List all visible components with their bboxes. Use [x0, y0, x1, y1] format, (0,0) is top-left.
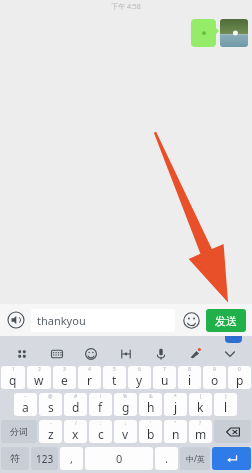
- button[interactable]: 9: [203, 366, 226, 389]
- staticText: k: [197, 399, 204, 415]
- staticText: a: [22, 399, 29, 415]
- button[interactable]: Text cursor: [116, 344, 136, 364]
- button[interactable]: 7: [153, 366, 176, 389]
- button[interactable]: ': [139, 420, 162, 443]
- staticText: j: [174, 399, 178, 415]
- staticText: 2: [38, 366, 41, 373]
- button[interactable]: Apps: [12, 344, 32, 364]
- button[interactable]: 2: [27, 366, 51, 389]
- staticText: p: [236, 372, 244, 388]
- button[interactable]: ?: [189, 420, 212, 443]
- staticText: 8: [188, 366, 191, 373]
- button[interactable]: Microphone: [151, 344, 171, 364]
- button[interactable]: 0: [228, 366, 251, 389]
- staticText: t: [112, 372, 117, 388]
- staticText: c: [98, 426, 104, 442]
- button[interactable]: (: [189, 393, 212, 416]
- button[interactable]: thankyou: [31, 309, 175, 332]
- staticText: r: [87, 372, 92, 388]
- staticText: !: [100, 393, 102, 400]
- staticText: -: [50, 420, 52, 427]
- staticText: thankyou: [37, 313, 86, 328]
- button[interactable]: %: [114, 393, 137, 416]
- staticText: ': [150, 420, 152, 427]
- button[interactable]: [191, 19, 216, 47]
- staticText: v: [122, 426, 129, 442]
- staticText: #: [74, 393, 78, 400]
- staticText: ;: [125, 420, 127, 427]
- staticText: ~: [24, 393, 27, 400]
- button[interactable]: 3: [53, 366, 76, 389]
- staticText: d: [72, 399, 80, 415]
- button[interactable]: 发送: [206, 309, 246, 332]
- button[interactable]: 符: [1, 447, 29, 470]
- staticText: @: [48, 393, 53, 400]
- staticText: 123: [36, 452, 54, 466]
- button[interactable]: -: [39, 420, 62, 443]
- button[interactable]: :: [89, 420, 112, 443]
- staticText: &: [149, 393, 153, 400]
- button[interactable]: 8: [178, 366, 201, 389]
- staticText: o: [211, 372, 219, 388]
- staticText: 5: [113, 366, 116, 373]
- button[interactable]: *: [164, 393, 187, 416]
- button[interactable]: 中/英: [180, 447, 210, 470]
- staticText: g: [122, 399, 130, 415]
- staticText: l: [224, 399, 228, 415]
- staticText: ): [225, 393, 227, 400]
- button[interactable]: 4: [78, 366, 101, 389]
- staticText: n: [172, 426, 180, 442]
- staticText: b: [147, 426, 155, 442]
- button[interactable]: Keyboard handle: [225, 336, 242, 343]
- button[interactable]: ": [164, 420, 187, 443]
- staticText: 发送: [215, 314, 237, 328]
- button[interactable]: @: [39, 393, 62, 416]
- staticText: %: [123, 393, 128, 400]
- staticText: s: [48, 399, 54, 415]
- button[interactable]: Hide keyboard: [220, 344, 240, 364]
- button[interactable]: 1: [1, 366, 25, 389]
- staticText: ,: [70, 451, 73, 466]
- button[interactable]: Voice input: [6, 310, 26, 330]
- staticText: h: [147, 399, 155, 415]
- staticText: 0: [116, 451, 123, 466]
- button[interactable]: !: [89, 393, 112, 416]
- staticText: y: [136, 372, 143, 388]
- staticText: e: [61, 372, 68, 388]
- staticText: :: [100, 420, 102, 427]
- button[interactable]: Emoji: [81, 344, 101, 364]
- staticText: .: [165, 451, 168, 466]
- button[interactable]: &: [139, 393, 162, 416]
- button[interactable]: Backspace: [214, 420, 251, 443]
- button[interactable]: ;: [114, 420, 137, 443]
- button[interactable]: 分词: [1, 420, 37, 443]
- button[interactable]: Keyboard layout: [47, 344, 67, 364]
- button[interactable]: ,: [60, 447, 83, 470]
- button[interactable]: ): [214, 393, 237, 416]
- staticText: /: [75, 420, 77, 427]
- staticText: i: [188, 372, 192, 388]
- button[interactable]: .: [155, 447, 178, 470]
- button[interactable]: 0: [85, 447, 153, 470]
- staticText: m: [195, 426, 207, 442]
- button[interactable]: Emoji: [181, 310, 201, 330]
- button[interactable]: /: [64, 420, 87, 443]
- button[interactable]: Handwriting: [185, 344, 205, 364]
- button[interactable]: Avatar: [220, 19, 248, 47]
- staticText: *: [174, 393, 177, 400]
- staticText: u: [161, 372, 169, 388]
- staticText: w: [34, 372, 44, 388]
- staticText: 3: [63, 366, 66, 373]
- button[interactable]: ~: [14, 393, 37, 416]
- staticText: 0: [238, 366, 241, 373]
- button[interactable]: 123: [31, 447, 58, 470]
- button[interactable]: 5: [103, 366, 126, 389]
- staticText: 6: [138, 366, 141, 373]
- staticText: 1: [12, 366, 15, 373]
- button[interactable]: 6: [128, 366, 151, 389]
- button[interactable]: #: [64, 393, 87, 416]
- staticText: ": [174, 420, 177, 427]
- staticText: 符: [10, 452, 20, 465]
- button[interactable]: Enter: [212, 447, 251, 470]
- staticText: 分词: [10, 426, 28, 437]
